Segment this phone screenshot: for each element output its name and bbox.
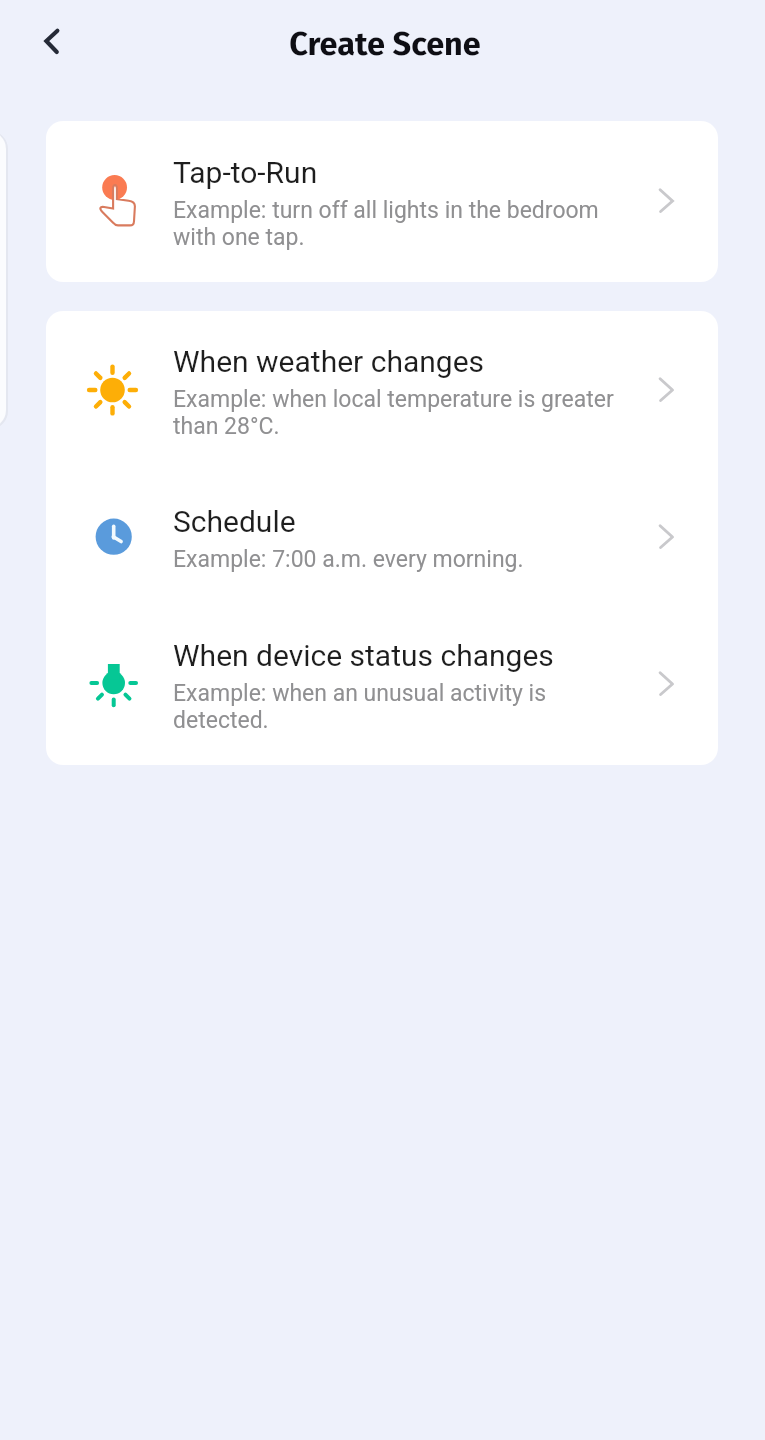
staticText: Example: turn off all lights in the bedr…: [173, 197, 635, 250]
staticText: Example: when local temperature is great…: [173, 386, 635, 439]
staticText: Example: 7:00 a.m. every morning.: [173, 546, 524, 573]
button[interactable]: [46, 624, 718, 744]
other: Open: [649, 373, 683, 407]
button[interactable]: [46, 330, 718, 450]
staticText: Create Scene: [289, 25, 481, 64]
button[interactable]: [46, 477, 718, 597]
other: Open: [649, 667, 683, 701]
staticText: When device status changes: [173, 638, 554, 673]
other: Open: [649, 184, 683, 218]
staticText: Example: when an unusual activity is det…: [173, 680, 635, 733]
button[interactable]: Back: [25, 21, 69, 65]
other: Open: [649, 520, 683, 554]
button[interactable]: [46, 141, 718, 261]
staticText: Schedule: [173, 504, 296, 539]
staticText: When weather changes: [173, 344, 485, 379]
staticText: Tap-to-Run: [173, 155, 318, 190]
